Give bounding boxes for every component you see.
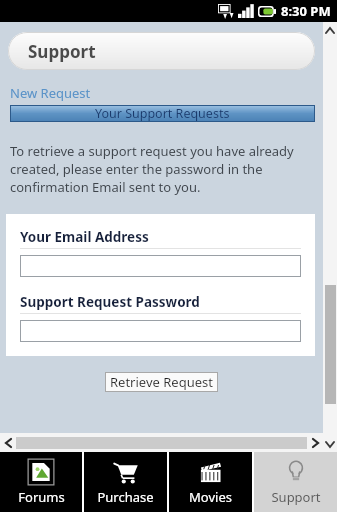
- button[interactable]: Scroll up: [323, 22, 337, 38]
- button[interactable]: [20, 255, 301, 277]
- button[interactable]: [20, 320, 301, 342]
- staticText: Support Request Password: [20, 293, 200, 311]
- button[interactable]: Retrieve Request: [110, 373, 213, 391]
- button[interactable]: Movies: [169, 452, 252, 512]
- staticText: Retrieve Request: [110, 373, 213, 391]
- button[interactable]: Scroll right: [307, 433, 323, 452]
- staticText: Your Support Requests: [95, 105, 230, 122]
- button[interactable]: New Request: [10, 84, 91, 102]
- button[interactable]: Purchase: [84, 452, 167, 512]
- staticText: Forums: [18, 488, 65, 506]
- staticText: Your Email Address: [20, 228, 149, 246]
- button[interactable]: Scroll left: [0, 433, 16, 452]
- staticText: To retrieve a support request you have a…: [10, 142, 309, 196]
- staticText: Movies: [189, 488, 232, 506]
- staticText: 8:30 PM: [281, 2, 331, 20]
- staticText: Support: [271, 488, 321, 506]
- staticText: Support: [28, 40, 96, 63]
- button[interactable]: Support: [8, 32, 315, 70]
- button[interactable]: Forums: [0, 452, 82, 512]
- button[interactable]: Scroll down: [323, 436, 337, 452]
- button[interactable]: Your Support Requests: [10, 105, 315, 122]
- button[interactable]: Support: [254, 452, 337, 512]
- staticText: Purchase: [97, 488, 154, 506]
